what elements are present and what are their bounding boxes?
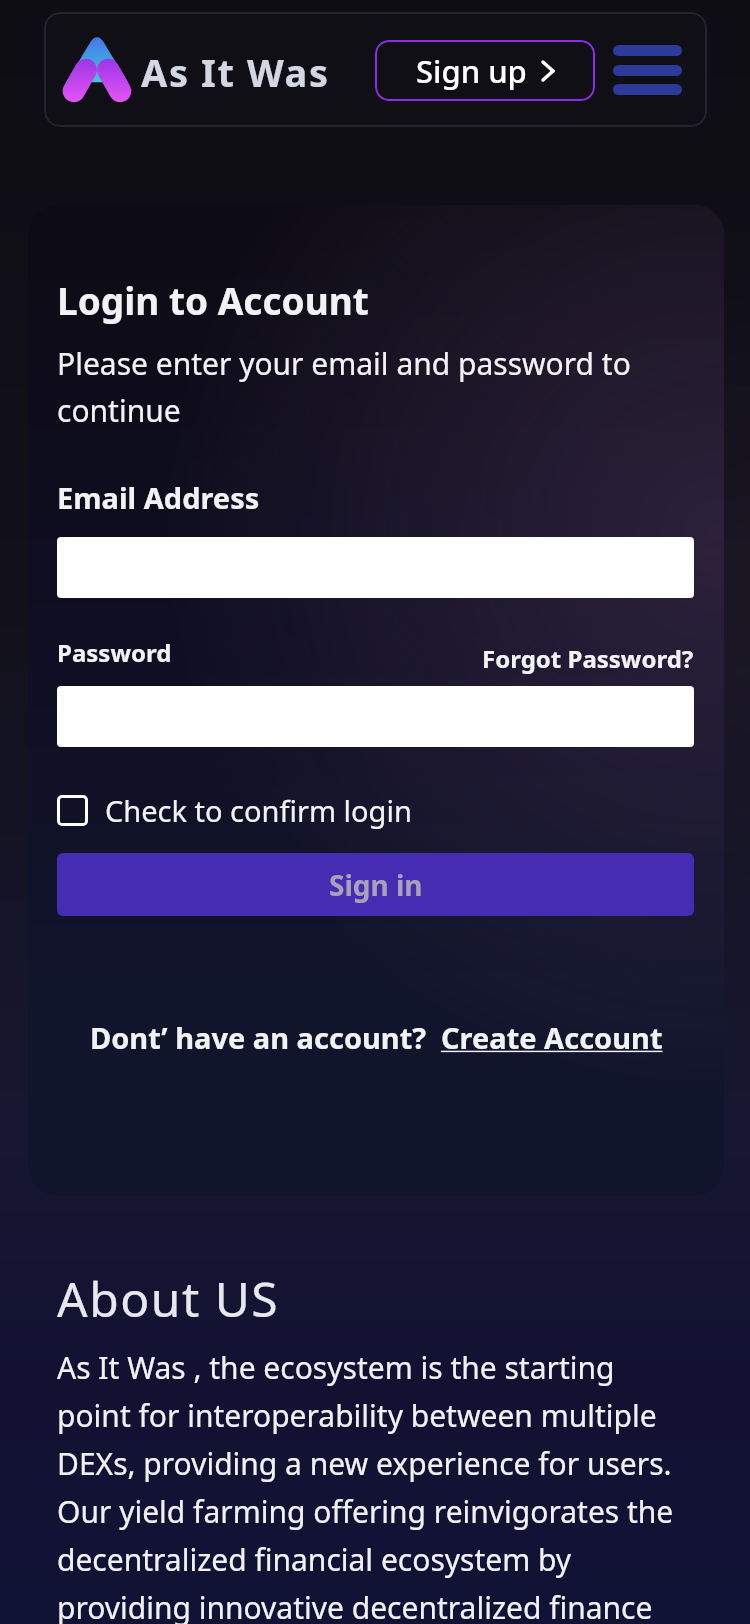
button[interactable] [57,537,694,598]
button[interactable] [57,686,694,747]
button[interactable]: Forgot Password? [482,642,694,675]
staticText: Dont’ have an account? [90,1018,427,1057]
staticText: Email Address [57,478,260,517]
button[interactable]: Check to confirm login [57,791,412,830]
staticText: Check to confirm login [105,791,412,830]
staticText: About US [57,1266,280,1331]
staticText: Sign up [416,50,527,92]
staticText: Password [57,636,172,669]
button[interactable] [62,34,352,106]
button[interactable]: Create Account [441,1018,663,1057]
staticText: Login to Account [57,275,369,325]
staticText: As It Was , the ecosystem is the startin… [57,1347,674,1624]
button[interactable] [613,45,682,95]
staticText: As It Was [141,46,330,98]
button[interactable]: Sign in [57,853,694,916]
staticText: Sign in [329,866,423,904]
button[interactable]: Sign up [375,40,595,101]
staticText: Please enter your email and password to … [57,343,631,431]
